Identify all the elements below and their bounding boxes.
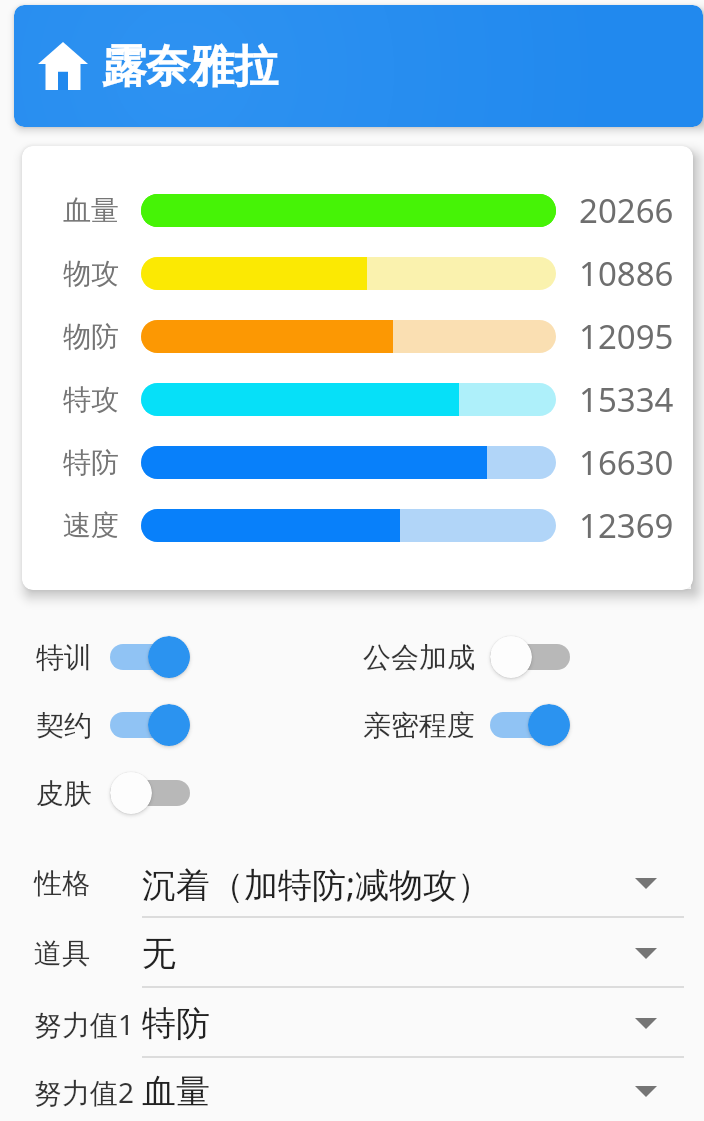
staticText: 努力值1: [34, 1005, 135, 1043]
staticText: 公会加成: [363, 640, 475, 675]
staticText: 物防: [63, 319, 119, 354]
staticText: 特防: [63, 445, 119, 480]
staticText: 契约: [36, 708, 92, 743]
button[interactable]: [490, 703, 570, 747]
staticText: 沉着（加特防;减物攻）: [142, 861, 492, 907]
button[interactable]: 性格: [0, 851, 704, 921]
staticText: 15334: [579, 377, 674, 422]
staticText: 血量: [63, 193, 119, 228]
staticText: 特防: [142, 1002, 210, 1045]
button[interactable]: 努力值2: [0, 1061, 704, 1121]
staticText: 皮肤: [36, 776, 92, 811]
button[interactable]: [110, 771, 190, 815]
button[interactable]: 露奈雅拉: [14, 5, 703, 127]
staticText: 20266: [579, 188, 674, 233]
staticText: 16630: [579, 440, 674, 485]
staticText: 努力值2: [34, 1073, 135, 1111]
staticText: 特攻: [63, 382, 119, 417]
staticText: 速度: [63, 508, 119, 543]
staticText: 道具: [34, 936, 90, 971]
staticText: 10886: [579, 251, 674, 296]
staticText: 物攻: [63, 256, 119, 291]
staticText: 性格: [34, 866, 90, 901]
button[interactable]: [110, 635, 190, 679]
button[interactable]: 努力值1: [0, 991, 704, 1061]
button[interactable]: [110, 703, 190, 747]
button[interactable]: [490, 635, 570, 679]
staticText: 亲密程度: [363, 708, 475, 743]
staticText: 露奈雅拉: [102, 39, 278, 94]
staticText: 特训: [36, 640, 92, 675]
staticText: 12095: [579, 314, 674, 359]
staticText: 无: [142, 932, 176, 975]
button[interactable]: 道具: [0, 921, 704, 991]
staticText: 12369: [579, 503, 674, 548]
staticText: 血量: [142, 1070, 210, 1113]
